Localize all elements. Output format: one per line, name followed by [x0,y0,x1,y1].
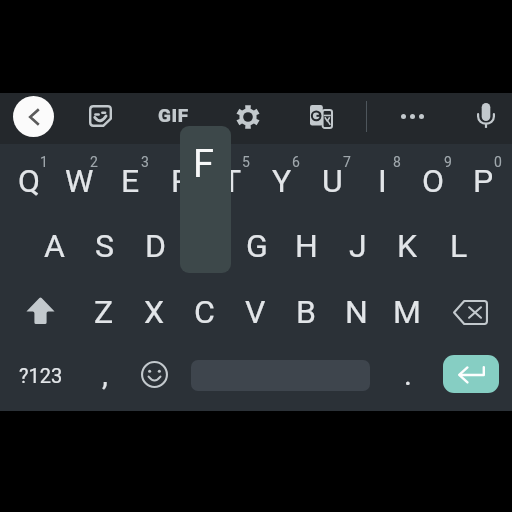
button[interactable]: T [206,152,257,210]
button[interactable]: G [231,217,282,275]
staticText: J [349,227,367,265]
staticText: S [95,227,114,265]
button[interactable]: Stickers [78,94,122,138]
button[interactable]: R [155,152,206,210]
button[interactable]: M [381,283,432,341]
button[interactable]: Voice input [464,94,508,138]
staticText: 6 [292,154,300,170]
staticText: U [322,162,343,200]
staticText: X [144,293,165,331]
button[interactable]: More options [390,94,434,138]
staticText: N [345,293,368,331]
staticText: 7 [343,154,351,170]
staticText: W [65,162,94,200]
button[interactable]: K [382,217,433,275]
staticText: R [171,162,191,200]
button[interactable]: A [29,217,80,275]
staticText: 4 [191,154,199,170]
button[interactable]: Emoji [131,348,177,400]
button[interactable]: L [433,217,484,275]
staticText: A [44,227,65,265]
button[interactable]: Settings [226,95,270,139]
staticText: , [102,357,108,392]
staticText: T [222,162,242,200]
button[interactable]: B [280,283,331,341]
button[interactable]: ?123 [5,349,77,401]
button[interactable]: V [230,283,281,341]
button[interactable]: Translate [299,95,343,139]
button[interactable]: . [385,348,431,400]
staticText: GIF [158,104,189,126]
button[interactable]: P [458,152,509,210]
button[interactable]: C [179,283,230,341]
staticText: 5 [242,154,250,170]
staticText: Y [272,162,292,200]
button[interactable]: Y [256,152,307,210]
button[interactable]: W [54,152,105,210]
button[interactable]: I [357,152,408,210]
button[interactable]: U [307,152,358,210]
staticText: . [404,357,412,392]
staticText: C [194,293,215,331]
button[interactable]: O [408,152,459,210]
staticText: G [246,227,268,265]
button[interactable]: Z [78,283,129,341]
button[interactable]: Q [4,152,55,210]
button[interactable]: F [180,217,231,275]
staticText: 1 [40,154,48,170]
button[interactable]: Enter [443,355,499,393]
staticText: I [378,162,387,200]
button[interactable]: J [332,217,383,275]
staticText: 3 [141,154,149,170]
staticText: 9 [444,154,452,170]
staticText: L [450,227,468,265]
button[interactable]: GIF [149,93,197,137]
button[interactable]: S [79,217,130,275]
button[interactable]: X [129,283,180,341]
staticText: Z [94,293,114,331]
staticText: D [145,227,166,265]
button[interactable]: D [130,217,181,275]
staticText: E [121,162,140,200]
button[interactable]: E [105,152,156,210]
staticText: H [295,227,318,265]
button[interactable]: N [331,283,382,341]
staticText: 2 [90,154,98,170]
staticText: B [296,293,316,331]
staticText: 8 [393,154,401,170]
staticText: P [473,162,494,200]
button[interactable]: Backspace [436,284,504,340]
staticText: ?123 [19,364,63,387]
staticText: O [422,162,445,200]
button[interactable]: , [82,348,128,400]
button[interactable]: Back [13,96,54,137]
staticText: Q [18,162,41,200]
button[interactable]: Shift [6,282,74,338]
button[interactable]: H [281,217,332,275]
staticText: V [245,293,266,331]
staticText: 0 [494,154,502,170]
staticText: M [393,293,421,331]
staticText: F [193,142,215,186]
staticText: K [397,227,418,265]
